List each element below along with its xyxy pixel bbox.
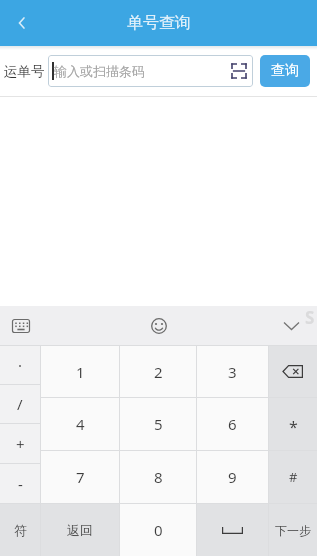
staticText: 查询: [271, 62, 299, 80]
staticText: 单号查询: [127, 13, 191, 33]
button[interactable]: 输入或扫描条码: [48, 55, 253, 87]
button[interactable]: 下一步: [269, 504, 317, 556]
button[interactable]: #: [269, 451, 317, 503]
button[interactable]: 3: [197, 346, 268, 397]
button[interactable]: +: [0, 424, 40, 463]
button[interactable]: *: [269, 398, 317, 450]
button[interactable]: 6: [197, 398, 268, 450]
staticText: 返回: [67, 522, 93, 538]
button[interactable]: 查询: [260, 55, 310, 87]
button[interactable]: [0, 0, 44, 46]
button[interactable]: 返回: [41, 504, 119, 556]
staticText: ·: [18, 355, 23, 375]
button[interactable]: [197, 504, 268, 556]
staticText: +: [16, 434, 25, 454]
staticText: #: [289, 468, 298, 486]
staticText: 下一步: [275, 523, 311, 538]
staticText: *: [289, 416, 298, 438]
button[interactable]: ·: [0, 346, 40, 384]
button[interactable]: 1: [41, 346, 119, 397]
staticText: 运单号: [4, 63, 45, 80]
staticText: 2: [154, 362, 163, 382]
button[interactable]: [146, 313, 172, 339]
button[interactable]: 8: [120, 451, 196, 503]
staticText: 1: [76, 362, 85, 382]
staticText: 0: [154, 520, 163, 540]
staticText: /: [17, 394, 23, 414]
staticText: S: [305, 306, 315, 329]
staticText: -: [18, 474, 23, 494]
button[interactable]: /: [0, 385, 40, 423]
staticText: 8: [154, 467, 163, 487]
staticText: 6: [228, 414, 237, 434]
button[interactable]: 2: [120, 346, 196, 397]
button[interactable]: 符: [0, 504, 40, 556]
staticText: 4: [76, 414, 85, 434]
button[interactable]: [279, 314, 303, 338]
button[interactable]: -: [0, 464, 40, 503]
button[interactable]: 4: [41, 398, 119, 450]
staticText: 7: [76, 467, 85, 487]
staticText: 输入或扫描条码: [54, 63, 145, 79]
button[interactable]: 9: [197, 451, 268, 503]
button[interactable]: [9, 314, 33, 338]
button[interactable]: 5: [120, 398, 196, 450]
staticText: 符: [14, 522, 27, 538]
staticText: 5: [154, 414, 163, 434]
button[interactable]: [269, 346, 317, 397]
staticText: 3: [228, 362, 237, 382]
button[interactable]: 0: [120, 504, 196, 556]
button[interactable]: 7: [41, 451, 119, 503]
staticText: 9: [228, 467, 237, 487]
